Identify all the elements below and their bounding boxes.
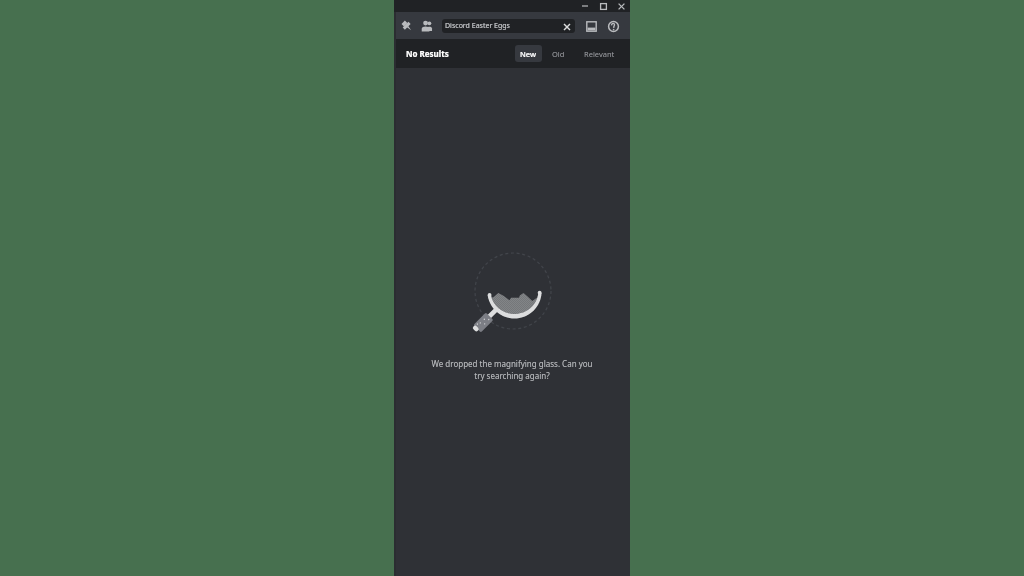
button[interactable]: Old <box>548 45 569 62</box>
button[interactable]: Discord Easter Eggs <box>442 19 575 33</box>
button[interactable]: Members <box>418 15 436 37</box>
button[interactable]: Clear search <box>562 22 571 31</box>
button[interactable]: Inbox <box>582 15 600 37</box>
staticText: try searching again? <box>474 370 550 381</box>
staticText: Relevant <box>584 49 615 59</box>
button[interactable]: Help <box>604 15 622 37</box>
staticText: Old <box>552 49 565 59</box>
staticText: No Results <box>406 48 449 59</box>
button[interactable]: Relevant <box>580 45 619 62</box>
button[interactable]: Minimize <box>577 0 593 12</box>
staticText: Discord Easter Eggs <box>445 21 510 31</box>
button[interactable]: New <box>515 45 542 62</box>
staticText: We dropped the magnifying glass. Can you <box>431 358 593 369</box>
button[interactable]: Pinned messages <box>398 15 416 37</box>
button[interactable]: Close <box>613 0 629 12</box>
button[interactable]: Maximize <box>595 0 611 12</box>
staticText: New <box>520 49 537 59</box>
